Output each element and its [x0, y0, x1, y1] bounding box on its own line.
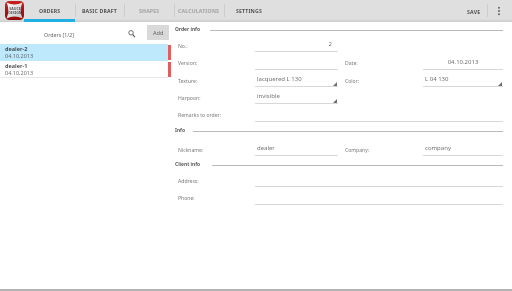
staticText: dealer-2 — [5, 45, 28, 52]
button[interactable] — [255, 110, 503, 122]
staticText: BASIC DRAFT — [82, 7, 117, 14]
staticText: invisible — [257, 92, 336, 100]
staticText: Orders [1/2] — [44, 31, 75, 38]
button[interactable]: 04.10.2013 — [423, 58, 503, 70]
staticText: lacquered L 130 — [257, 75, 336, 83]
staticText: SAUCE DESIGN — [8, 6, 22, 16]
button[interactable]: dealer — [255, 144, 338, 156]
button[interactable]: Search — [125, 27, 138, 40]
button[interactable]: 2 — [255, 40, 338, 52]
button[interactable]: L 04 130 — [423, 75, 503, 87]
staticText: Company: — [345, 147, 370, 154]
staticText: Nickname: — [178, 147, 204, 154]
button[interactable] — [255, 58, 338, 70]
button[interactable] — [255, 193, 503, 205]
staticText: Color: — [345, 78, 360, 85]
staticText: Harpoon: — [178, 95, 201, 102]
staticText: Order info — [175, 26, 201, 33]
staticText: CALCULATIONS — [178, 7, 220, 14]
staticText: 04.10.2013 — [5, 52, 34, 59]
staticText: SETTINGS — [236, 7, 262, 14]
staticText: dealer-1 — [5, 62, 28, 69]
staticText: company — [425, 144, 501, 152]
staticText: 2 — [257, 40, 332, 48]
staticText: Version: — [178, 60, 198, 67]
button[interactable]: SHAPES — [124, 0, 174, 22]
staticText: Info — [175, 127, 186, 134]
staticText: SHAPES — [139, 7, 160, 14]
button[interactable]: company — [423, 144, 503, 156]
button[interactable]: Sauce Design logo — [5, 1, 24, 20]
button[interactable]: ORDERS — [24, 0, 75, 22]
staticText: 04.10.2013 — [425, 58, 501, 66]
staticText: dealer — [257, 144, 336, 152]
staticText: Address: — [178, 178, 199, 185]
button[interactable]: invisible — [255, 92, 338, 104]
staticText: SAVE — [467, 8, 481, 15]
button[interactable]: CALCULATIONS — [174, 0, 224, 22]
staticText: ORDERS — [39, 7, 61, 14]
button[interactable]: SETTINGS — [224, 0, 274, 22]
staticText: Remarks to order: — [178, 112, 222, 119]
staticText: L 04 130 — [425, 75, 501, 83]
button[interactable]: lacquered L 130 — [255, 75, 338, 87]
button[interactable]: More options — [489, 0, 509, 22]
staticText: Client info — [175, 161, 201, 168]
button[interactable]: Add — [147, 25, 169, 40]
button[interactable]: SAVE — [458, 0, 489, 22]
staticText: Date: — [345, 60, 358, 67]
staticText: No.: — [178, 43, 188, 50]
staticText: Add — [153, 29, 164, 37]
button[interactable]: dealer-2 — [0, 44, 171, 61]
staticText: 04.10.2013 — [5, 69, 34, 76]
staticText: Phone: — [178, 195, 195, 202]
button[interactable] — [255, 175, 503, 187]
button[interactable]: dealer-1 — [0, 61, 171, 78]
staticText: Texture: — [178, 78, 198, 85]
button[interactable]: BASIC DRAFT — [75, 0, 124, 22]
